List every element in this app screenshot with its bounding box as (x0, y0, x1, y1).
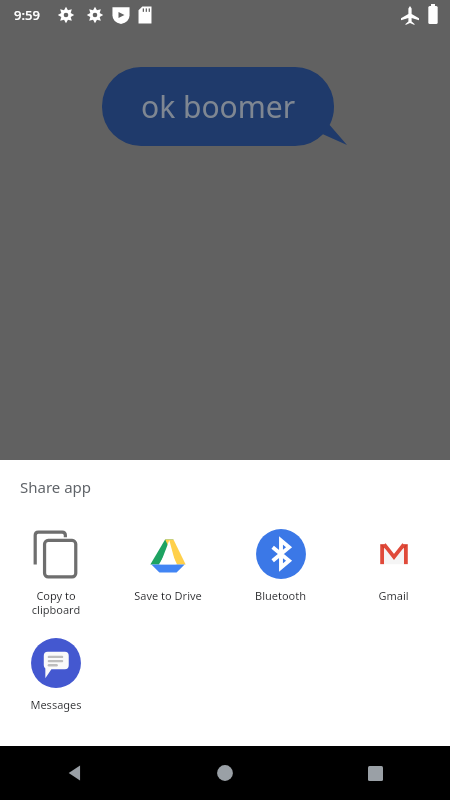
staticText: Share app (20, 477, 92, 497)
button[interactable]: Recent apps (300, 746, 450, 800)
staticText: Messages (0, 697, 112, 712)
staticText: Bluetooth (224, 588, 337, 603)
staticText: Save to Drive (112, 588, 224, 603)
button[interactable]: Back (0, 746, 150, 800)
button[interactable]: Copy to clipboard (0, 524, 112, 621)
staticText: ok boomer (141, 86, 296, 127)
button[interactable]: Gmail (337, 524, 450, 607)
staticText: Copy to clipboard (0, 588, 112, 617)
other: Save to Drive (142, 528, 194, 580)
staticText: Gmail (337, 588, 450, 603)
button[interactable]: Save to Drive (112, 524, 224, 607)
other: Copy to clipboard (30, 528, 82, 580)
other: Messages (30, 637, 82, 689)
button[interactable]: Bluetooth (224, 524, 337, 607)
button[interactable]: Messages (0, 633, 112, 716)
button[interactable]: Home (150, 746, 300, 800)
other: Gmail (368, 528, 420, 580)
other: Bluetooth (255, 528, 307, 580)
staticText: 9:59 (14, 6, 40, 24)
